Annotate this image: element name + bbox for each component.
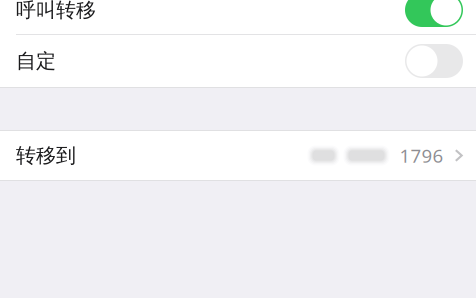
- button[interactable]: 自定: [0, 35, 476, 87]
- staticText: 自定: [16, 48, 56, 74]
- button[interactable]: 呼叫转移: [0, 0, 476, 34]
- staticText: 呼叫转移: [16, 0, 96, 23]
- staticText: 1796: [399, 143, 443, 168]
- staticText: 转移到: [16, 143, 76, 168]
- button[interactable]: 转移到: [0, 131, 476, 180]
